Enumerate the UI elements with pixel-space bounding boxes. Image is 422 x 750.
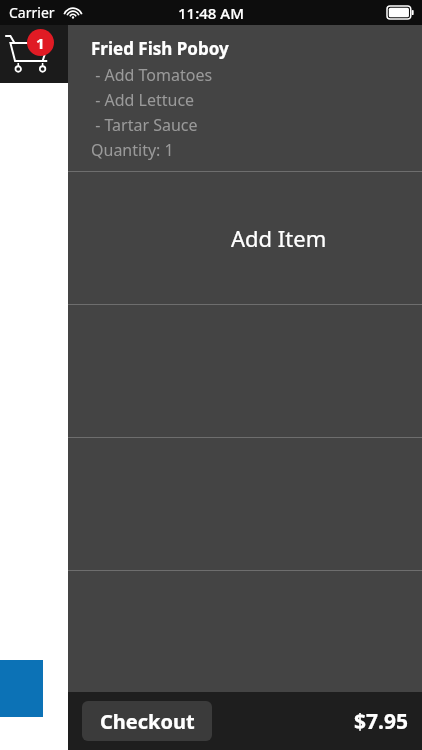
staticText: Add Item (231, 223, 327, 253)
staticText: - Add Tomatoes (91, 64, 213, 86)
staticText: $7.95 (354, 707, 408, 736)
button[interactable]: Checkout (82, 701, 212, 741)
staticText: 11:48 AM (178, 3, 244, 23)
button[interactable]: Fried Fish Poboy (68, 25, 422, 171)
button[interactable]: Add Item (68, 172, 422, 304)
staticText: 1 (36, 33, 45, 53)
staticText: - Add Lettuce (91, 89, 195, 111)
staticText: Carrier (9, 3, 55, 22)
staticText: Quantity: 1 (91, 139, 174, 161)
staticText: - Tartar Sauce (91, 114, 198, 136)
staticText: Fried Fish Poboy (91, 37, 229, 60)
button[interactable]: Cart, 1 item (2, 28, 60, 78)
button[interactable] (68, 571, 422, 750)
staticText: Checkout (100, 708, 195, 735)
